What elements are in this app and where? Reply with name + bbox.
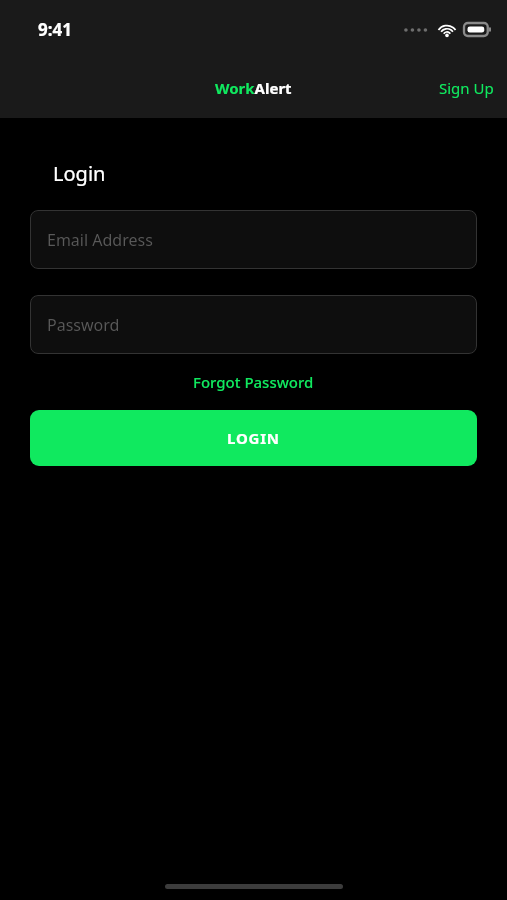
- button[interactable]: WorkAlert: [209, 74, 298, 102]
- button[interactable]: Sign Up: [426, 70, 507, 106]
- staticText: Login: [53, 160, 106, 187]
- staticText: Password: [47, 314, 120, 336]
- staticText: 9:41: [38, 18, 72, 41]
- button[interactable]: Forgot Password: [183, 366, 324, 398]
- staticText: LOGIN: [227, 428, 280, 448]
- staticText: Forgot Password: [193, 372, 314, 392]
- button[interactable]: Password: [30, 295, 477, 354]
- staticText: WorkAlert: [215, 78, 292, 98]
- button[interactable]: LOGIN: [30, 410, 477, 466]
- button[interactable]: Email Address: [30, 210, 477, 269]
- staticText: Sign Up: [439, 78, 494, 98]
- staticText: Email Address: [47, 229, 153, 251]
